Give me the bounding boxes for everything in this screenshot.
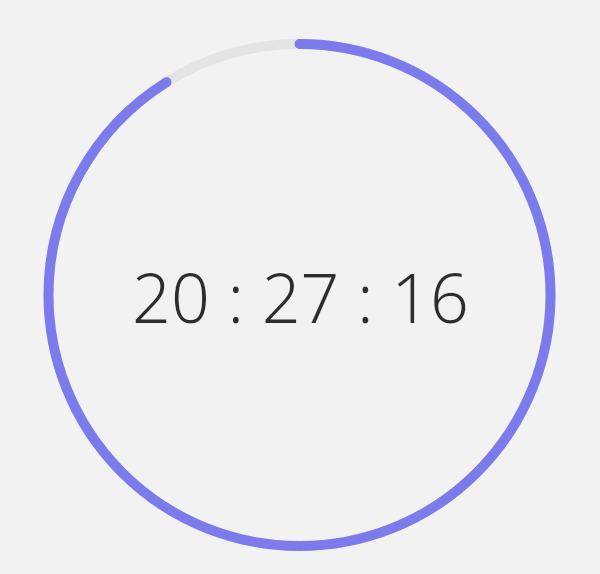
button[interactable]: Timer, 20 hours 27 minutes 16 seconds re… [0,0,600,574]
staticText: 20 : 27 : 16 [132,250,469,343]
